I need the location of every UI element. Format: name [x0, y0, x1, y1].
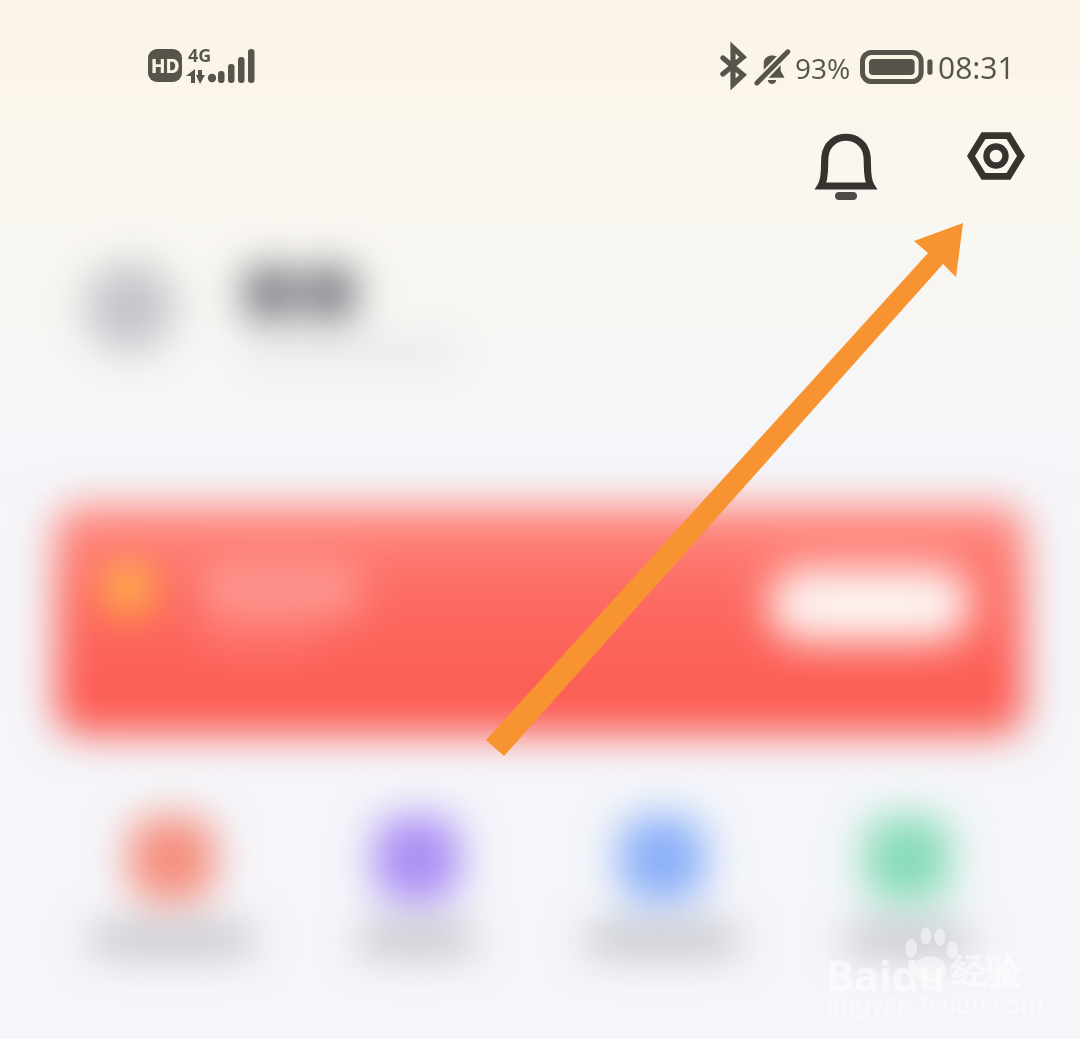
- button[interactable]: Notifications: [801, 111, 891, 201]
- staticText: 经验: [951, 950, 1021, 994]
- staticText: HD: [151, 53, 180, 79]
- staticText: 4G: [188, 43, 212, 68]
- staticText: Baidu: [826, 946, 946, 1003]
- staticText: 93%: [795, 49, 851, 87]
- button[interactable]: Settings: [951, 111, 1041, 201]
- staticText: 08:31: [938, 47, 1015, 88]
